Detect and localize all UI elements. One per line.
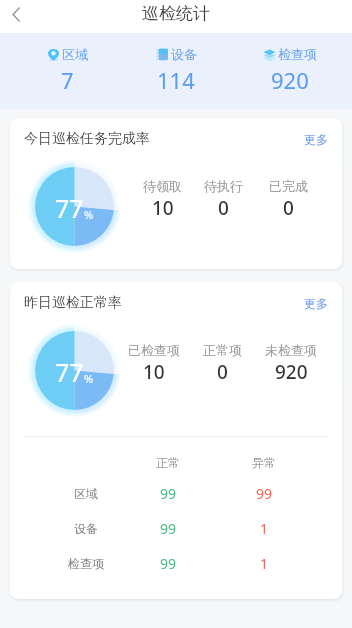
staticText: 设备	[74, 521, 98, 536]
staticText: 0	[218, 195, 229, 221]
staticText: 更多	[304, 132, 328, 147]
staticText: 1	[260, 554, 269, 573]
staticText: 待领取	[143, 178, 182, 194]
staticText: 检查项	[278, 46, 317, 62]
staticText: 7	[61, 65, 74, 95]
button[interactable]: 设备	[118, 33, 234, 109]
staticText: 已检查项	[128, 342, 180, 358]
staticText: 设备	[171, 46, 197, 62]
staticText: 巡检统计	[142, 3, 210, 24]
staticText: 更多	[304, 296, 328, 311]
staticText: 待执行	[204, 178, 243, 194]
button[interactable]: Back	[0, 0, 32, 30]
staticText: %	[84, 371, 94, 386]
staticText: 区域	[62, 46, 88, 62]
staticText: 77	[55, 355, 84, 389]
staticText: 920	[275, 359, 308, 385]
staticText: 正常	[156, 455, 180, 470]
button[interactable]: 更多	[304, 132, 328, 147]
staticText: 检查项	[68, 556, 104, 571]
staticText: 已完成	[269, 178, 308, 194]
staticText: 10	[152, 195, 174, 221]
staticText: 99	[256, 484, 273, 503]
button[interactable]: 更多	[304, 296, 328, 311]
staticText: 0	[283, 195, 294, 221]
staticText: 未检查项	[265, 342, 317, 358]
staticText: 今日巡检任务完成率	[24, 130, 150, 148]
staticText: 1	[260, 519, 269, 538]
staticText: 区域	[74, 486, 98, 501]
staticText: 99	[160, 484, 177, 503]
staticText: 77	[55, 191, 84, 225]
staticText: %	[84, 207, 94, 222]
staticText: 114	[157, 65, 195, 95]
staticText: 99	[160, 554, 177, 573]
staticText: 920	[271, 65, 309, 95]
button[interactable]: 区域	[9, 33, 125, 109]
staticText: 10	[143, 359, 165, 385]
staticText: 0	[217, 359, 228, 385]
staticText: 异常	[252, 455, 276, 470]
staticText: 正常项	[203, 342, 242, 358]
staticText: 99	[160, 519, 177, 538]
staticText: 昨日巡检正常率	[24, 294, 122, 312]
button[interactable]: 检查项	[232, 33, 348, 109]
